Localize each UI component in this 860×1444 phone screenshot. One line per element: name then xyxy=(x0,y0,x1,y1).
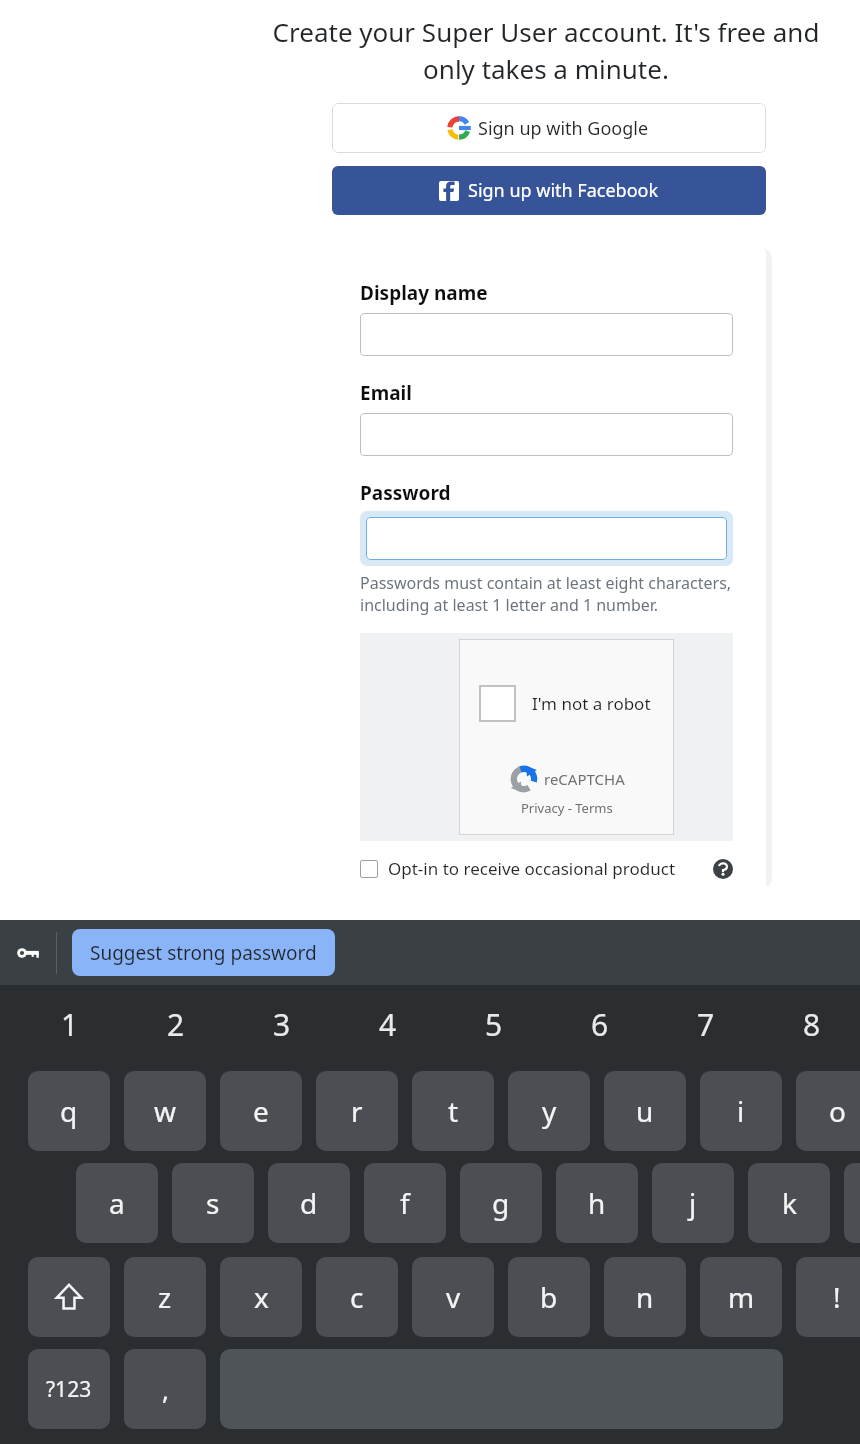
button[interactable]: w xyxy=(124,1071,206,1151)
staticText: ! xyxy=(833,1278,841,1316)
staticText: q xyxy=(60,1092,78,1130)
button[interactable]: e xyxy=(220,1071,302,1151)
staticText: v xyxy=(446,1278,461,1316)
staticText: 5 xyxy=(485,1004,503,1045)
staticText: t xyxy=(448,1092,459,1130)
staticText: x xyxy=(254,1278,269,1316)
button[interactable]: h xyxy=(556,1163,638,1243)
staticText: f xyxy=(400,1184,410,1222)
staticText: 1 xyxy=(61,1004,79,1045)
staticText: I'm not a robot xyxy=(532,692,651,715)
staticText: h xyxy=(588,1184,606,1222)
button[interactable]: r xyxy=(316,1071,398,1151)
staticText: k xyxy=(782,1184,797,1222)
button[interactable]: l xyxy=(844,1163,860,1243)
staticText: 6 xyxy=(591,1004,609,1045)
button[interactable]: z xyxy=(124,1257,206,1337)
button[interactable]: x xyxy=(220,1257,302,1337)
button[interactable]: 7 xyxy=(660,993,752,1055)
button[interactable] xyxy=(366,517,727,560)
button[interactable]: v xyxy=(412,1257,494,1337)
button[interactable]: 3 xyxy=(236,993,328,1055)
staticText: 7 xyxy=(697,1004,715,1045)
button[interactable]: q xyxy=(28,1071,110,1151)
staticText: 2 xyxy=(167,1004,185,1045)
staticText: w xyxy=(154,1092,177,1130)
button[interactable]: 2 xyxy=(130,993,222,1055)
button[interactable]: n xyxy=(604,1257,686,1337)
button[interactable]: Shift xyxy=(28,1257,110,1337)
button[interactable]: 5 xyxy=(448,993,540,1055)
staticText: n xyxy=(636,1278,654,1316)
staticText: Sign up with Facebook xyxy=(468,178,659,203)
button[interactable]: 6 xyxy=(554,993,646,1055)
staticText: Passwords must contain at least eight ch… xyxy=(360,572,733,616)
button[interactable]: Sign up with Facebook xyxy=(332,166,766,215)
staticText: o xyxy=(829,1092,846,1130)
staticText: d xyxy=(300,1184,318,1222)
button[interactable]: u xyxy=(604,1071,686,1151)
staticText: s xyxy=(206,1184,220,1222)
button[interactable]: Opt-in to receive occasional product xyxy=(360,857,733,880)
button[interactable]: m xyxy=(700,1257,782,1337)
staticText: Suggest strong password xyxy=(90,940,317,966)
staticText: Privacy - Terms xyxy=(521,799,613,817)
staticText: ?123 xyxy=(46,1375,92,1404)
button[interactable]: f xyxy=(364,1163,446,1243)
staticText: Password xyxy=(360,480,451,506)
staticText: reCAPTCHA xyxy=(544,769,625,789)
button[interactable]: a xyxy=(76,1163,158,1243)
staticText: u xyxy=(636,1092,654,1130)
staticText: y xyxy=(542,1092,557,1130)
staticText: Email xyxy=(360,380,412,406)
staticText: Create your Super User account. It's fre… xyxy=(258,14,834,87)
staticText: Display name xyxy=(360,280,488,306)
button[interactable]: b xyxy=(508,1257,590,1337)
button[interactable]: i xyxy=(700,1071,782,1151)
staticText: i xyxy=(737,1092,745,1130)
staticText: e xyxy=(253,1092,269,1130)
button[interactable]: s xyxy=(172,1163,254,1243)
staticText: c xyxy=(350,1278,364,1316)
button[interactable]: Help xyxy=(713,859,733,879)
staticText: a xyxy=(109,1184,125,1222)
staticText: g xyxy=(492,1184,510,1222)
button[interactable]: Password manager xyxy=(0,920,56,985)
button[interactable]: o xyxy=(796,1071,860,1151)
button[interactable]: ! xyxy=(796,1257,860,1337)
button[interactable]: 1 xyxy=(24,993,116,1055)
button[interactable]: , xyxy=(124,1349,206,1429)
staticText: 8 xyxy=(803,1004,821,1045)
button[interactable]: Sign up with Google xyxy=(332,103,766,153)
staticText: j xyxy=(689,1184,697,1222)
staticText: m xyxy=(728,1278,755,1316)
staticText: 3 xyxy=(273,1004,291,1045)
button[interactable]: g xyxy=(460,1163,542,1243)
button[interactable]: c xyxy=(316,1257,398,1337)
staticText: z xyxy=(158,1278,172,1316)
button[interactable]: j xyxy=(652,1163,734,1243)
button[interactable] xyxy=(360,413,733,456)
button[interactable]: d xyxy=(268,1163,350,1243)
button[interactable]: t xyxy=(412,1071,494,1151)
staticText: b xyxy=(540,1278,558,1316)
button[interactable]: Suggest strong password xyxy=(72,929,335,976)
button[interactable]: ?123 xyxy=(28,1349,110,1429)
staticText: , xyxy=(162,1372,169,1407)
button[interactable]: 8 xyxy=(766,993,858,1055)
button[interactable]: 4 xyxy=(342,993,434,1055)
staticText: Sign up with Google xyxy=(478,116,649,141)
button[interactable]: k xyxy=(748,1163,830,1243)
button[interactable]: y xyxy=(508,1071,590,1151)
staticText: r xyxy=(351,1092,363,1130)
button[interactable]: I'm not a robot xyxy=(459,639,674,835)
staticText: Opt-in to receive occasional product xyxy=(388,857,705,880)
button[interactable] xyxy=(360,313,733,356)
staticText: 4 xyxy=(379,1004,397,1045)
